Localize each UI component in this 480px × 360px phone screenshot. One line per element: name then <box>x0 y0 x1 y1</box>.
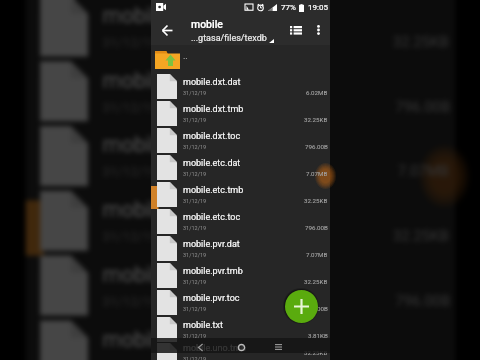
staticText: 796.00B <box>305 305 328 312</box>
staticText: 796.00B <box>395 292 450 308</box>
staticText: 77% <box>281 3 296 12</box>
staticText: 31/12/19 <box>183 117 207 123</box>
staticText: 32.25KB <box>304 116 328 123</box>
button[interactable]: Sort <box>285 19 307 41</box>
staticText: mobile.dxt.toc <box>102 68 242 95</box>
staticText: 31/12/19 <box>183 252 207 258</box>
staticText: 31/12/19 <box>102 229 160 244</box>
button[interactable]: Add <box>285 290 318 323</box>
staticText: 31/12/19 <box>183 279 207 285</box>
button[interactable]: Back <box>156 19 178 41</box>
button[interactable]: mobile.etc.tmb <box>151 181 330 208</box>
staticText: mobile.etc.tmb <box>183 185 244 196</box>
button[interactable]: mobile.txt <box>151 316 330 343</box>
staticText: mobile.dxt.dat <box>183 77 241 88</box>
staticText: mobile.dxt.toc <box>183 131 241 142</box>
staticText: mobile.pvr.toc <box>183 293 240 304</box>
staticText: mobile.pvr.tmb <box>183 266 243 277</box>
staticText: 32.25KB <box>304 197 328 204</box>
staticText: 32.25KB <box>304 278 328 285</box>
button[interactable]: Home <box>232 338 250 356</box>
button[interactable]: mobile.dxt.toc <box>26 59 455 124</box>
staticText: mobile.etc.dat <box>183 158 241 169</box>
staticText: 7.07MB <box>398 162 450 179</box>
staticText: 31/12/19 <box>183 90 207 96</box>
staticText: 32.25KB <box>393 227 450 244</box>
staticText: mobile.dxt.tmb <box>102 4 249 30</box>
staticText: mobile.txt <box>183 320 223 331</box>
staticText: mobile.pvr.dat <box>183 239 240 250</box>
button[interactable]: mobile.pvr.tmb <box>151 262 330 289</box>
staticText: 7.07MB <box>306 251 328 258</box>
staticText: 7.07MB <box>306 170 328 177</box>
button[interactable]: mobile.pvr.dat <box>151 235 330 262</box>
staticText: 31/12/19 <box>183 356 207 360</box>
staticText: 32.25KB <box>393 32 450 49</box>
staticText: 31/12/19 <box>183 144 207 150</box>
button[interactable]: mobile.dxt.dat <box>151 73 330 100</box>
button[interactable]: mobile.pvr.toc <box>151 289 330 316</box>
button[interactable]: Back <box>191 338 209 356</box>
button[interactable]: mobile.pvr.dat <box>26 318 455 360</box>
staticText: 32.25KB <box>304 349 328 356</box>
staticText: mobile.etc.toc <box>102 263 242 289</box>
staticText: 796.00B <box>395 97 450 114</box>
button[interactable]: mobile.etc.dat <box>26 124 455 188</box>
button[interactable]: mobile.etc.toc <box>151 208 330 235</box>
staticText: 31/12/19 <box>183 306 207 312</box>
staticText: 796.00B <box>305 143 328 150</box>
button[interactable]: mobile.uno.tmb <box>151 343 330 360</box>
staticText: mobile <box>191 18 223 30</box>
staticText: 31/12/19 <box>183 198 207 204</box>
staticText: mobile.uno.tmb <box>183 343 246 354</box>
staticText: 31/12/19 <box>102 164 160 179</box>
staticText: 31/12/19 <box>183 225 207 231</box>
button[interactable]: Recent apps <box>269 338 287 356</box>
staticText: 19:05 <box>308 3 328 12</box>
staticText: 6.02MB <box>306 89 328 96</box>
staticText: mobile.etc.toc <box>183 212 241 223</box>
button[interactable]: mobile.etc.tmb <box>26 188 455 253</box>
button[interactable]: More options <box>307 19 329 41</box>
staticText: 31/12/19 <box>102 294 160 308</box>
staticText: 31/12/19 <box>102 35 160 49</box>
button[interactable]: .. <box>151 45 330 73</box>
staticText: 796.00B <box>305 224 328 231</box>
staticText: ...gtasa/files/texdb <box>191 33 267 44</box>
staticText: 31/12/19 <box>102 359 160 360</box>
staticText: mobile.dxt.tmb <box>183 104 244 115</box>
staticText: 31/12/19 <box>183 333 207 339</box>
staticText: .. <box>183 51 188 62</box>
staticText: 31/12/19 <box>102 100 160 114</box>
staticText: mobile.etc.dat <box>102 133 242 160</box>
button[interactable]: mobile.etc.toc <box>26 253 455 318</box>
button[interactable]: mobile.dxt.tmb <box>26 0 455 59</box>
staticText: mobile.pvr.dat <box>102 328 239 354</box>
staticText: 31/12/19 <box>183 171 207 177</box>
staticText: mobile.etc.tmb <box>102 198 249 224</box>
button[interactable]: mobile.dxt.tmb <box>151 100 330 127</box>
button[interactable]: mobile.dxt.toc <box>151 127 330 154</box>
button[interactable]: mobile.etc.dat <box>151 154 330 181</box>
staticText: 3.81KB <box>308 332 328 339</box>
